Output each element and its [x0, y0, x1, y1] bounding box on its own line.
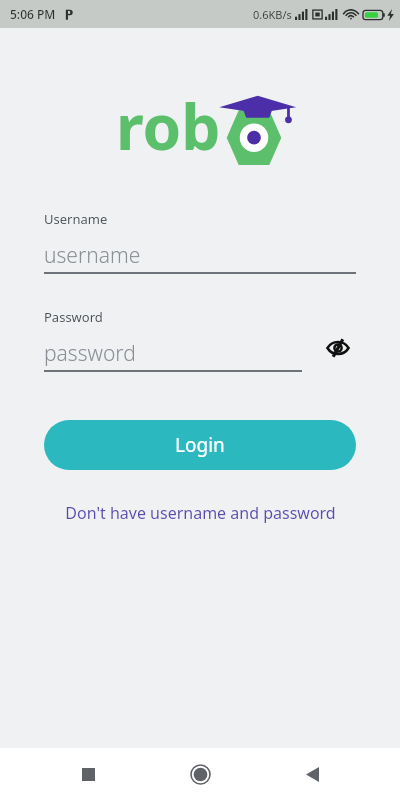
staticText: username [44, 241, 141, 270]
staticText: rob [116, 84, 221, 168]
button[interactable]: Login [44, 420, 356, 470]
button[interactable]: Don't have username and password [65, 502, 336, 524]
button[interactable]: Home [176, 750, 224, 798]
staticText: 5:06 PM [10, 6, 56, 22]
button[interactable]: username [44, 238, 356, 272]
staticText: Login [175, 432, 225, 458]
button[interactable]: Show password [320, 330, 356, 366]
button[interactable]: password [44, 336, 302, 370]
staticText: Username [44, 210, 108, 228]
button[interactable]: Recent apps [64, 750, 112, 798]
button[interactable]: Back [288, 750, 336, 798]
staticText: Don't have username and password [65, 502, 336, 524]
staticText: password [44, 339, 136, 368]
staticText: 0.6KB/s [253, 7, 292, 22]
staticText: Password [44, 308, 103, 326]
